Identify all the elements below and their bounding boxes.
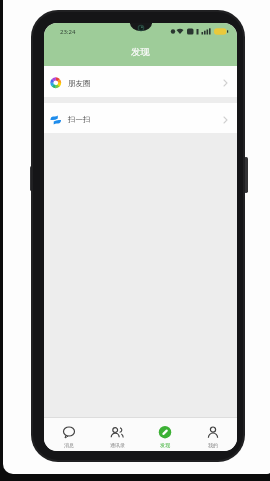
staticText: 发现 — [131, 46, 150, 58]
button[interactable]: 朋友圈 — [44, 66, 237, 97]
staticText: 发现 — [160, 442, 170, 448]
button[interactable]: 我的 — [189, 418, 237, 451]
staticText: 扫一扫 — [68, 115, 91, 124]
staticText: 23:24 — [60, 28, 76, 36]
staticText: 消息 — [64, 442, 74, 448]
staticText: 通讯录 — [110, 442, 125, 448]
staticText: 朋友圈 — [68, 79, 91, 88]
staticText: 我的 — [208, 442, 218, 448]
button[interactable]: 扫一扫 — [44, 103, 237, 133]
button[interactable]: 消息 — [44, 418, 93, 451]
button[interactable]: 发现 — [141, 418, 189, 451]
button[interactable]: 通讯录 — [93, 418, 141, 451]
